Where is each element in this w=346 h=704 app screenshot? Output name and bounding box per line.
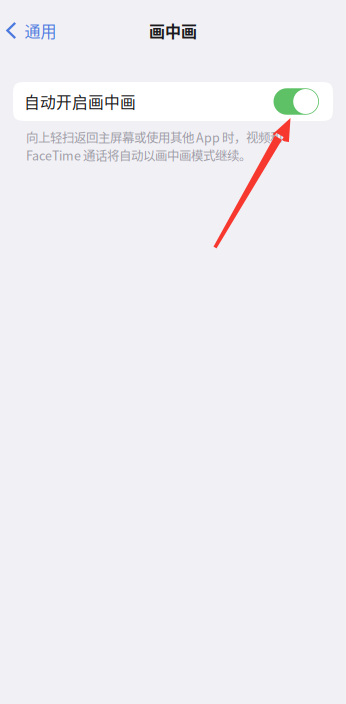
staticText: 自动开启画中画 xyxy=(24,90,136,113)
staticText: 通用 xyxy=(25,19,57,42)
staticText: 向上轻扫返回主屏幕或使用其他 App 时，视频和 FaceTime 通话将自动以… xyxy=(26,128,282,164)
button[interactable]: 自动开启画中画 xyxy=(13,82,333,121)
button[interactable]: 返回通用 xyxy=(0,12,65,49)
staticText: 画中画 xyxy=(149,19,197,42)
